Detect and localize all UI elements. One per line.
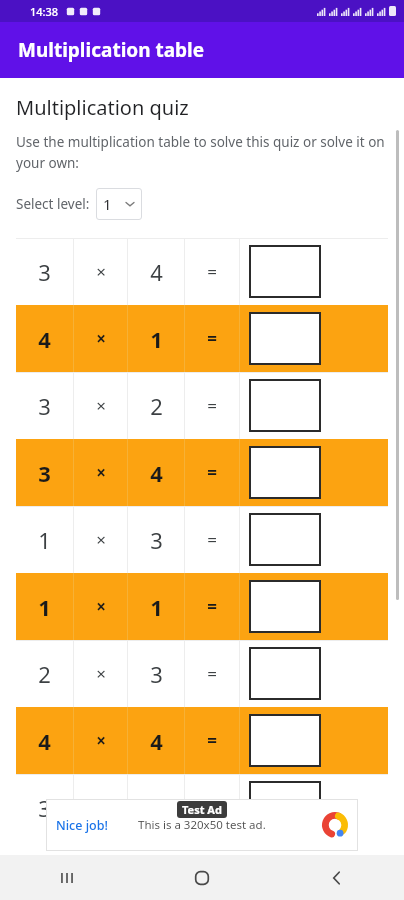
staticText: 1 <box>103 194 112 214</box>
staticText: 3 <box>150 659 163 689</box>
button[interactable]: 1 <box>96 188 142 220</box>
button[interactable]: 3 <box>16 774 388 841</box>
button[interactable]: Answer input <box>249 513 321 566</box>
staticText: 1 <box>150 592 163 622</box>
button[interactable]: 4 <box>16 305 388 372</box>
staticText: 1 <box>150 793 163 823</box>
button[interactable]: Answer input <box>249 781 321 834</box>
staticText: Select level: <box>16 195 90 213</box>
staticText: = <box>207 796 217 819</box>
staticText: × <box>96 796 106 819</box>
staticText: × <box>96 461 106 484</box>
staticText: 14:38 <box>30 4 59 19</box>
staticText: × <box>96 327 106 350</box>
staticText: = <box>207 394 217 417</box>
staticText: 4 <box>150 458 163 488</box>
button[interactable]: 4 <box>16 707 388 774</box>
staticText: 3 <box>38 793 51 823</box>
staticText: = <box>207 528 217 551</box>
button[interactable]: Answer input <box>249 647 321 700</box>
staticText: × <box>96 729 106 752</box>
staticText: 2 <box>150 391 163 421</box>
staticText: × <box>96 260 106 283</box>
button[interactable]: Back <box>269 855 404 900</box>
button[interactable]: Nice job! <box>46 799 358 851</box>
staticText: Nice job! <box>56 817 108 834</box>
staticText: 4 <box>150 257 163 287</box>
button[interactable]: Answer input <box>249 446 321 499</box>
staticText: × <box>96 394 106 417</box>
staticText: Use the multiplication table to solve th… <box>16 133 388 172</box>
staticText: 4 <box>150 726 163 756</box>
staticText: 1 <box>38 525 51 555</box>
staticText: = <box>207 729 217 752</box>
staticText: Multiplication table <box>18 37 205 63</box>
button[interactable]: Answer input <box>249 312 321 365</box>
staticText: 4 <box>38 324 51 354</box>
button[interactable]: 1 <box>16 573 388 640</box>
staticText: = <box>207 461 217 484</box>
staticText: 3 <box>38 257 51 287</box>
staticText: 3 <box>150 525 163 555</box>
staticText: 3 <box>38 458 51 488</box>
button[interactable]: Answer input <box>249 714 321 767</box>
staticText: = <box>207 662 217 685</box>
button[interactable]: 3 <box>16 439 388 506</box>
button[interactable]: 3 <box>16 238 388 305</box>
staticText: × <box>96 528 106 551</box>
button[interactable]: 2 <box>16 640 388 707</box>
staticText: 1 <box>150 324 163 354</box>
button[interactable]: Answer input <box>249 580 321 633</box>
staticText: 1 <box>38 592 51 622</box>
button[interactable]: Answer input <box>249 245 321 298</box>
button[interactable]: 3 <box>16 372 388 439</box>
staticText: = <box>207 260 217 283</box>
staticText: This is a 320x50 test ad. <box>138 817 266 833</box>
button[interactable]: Home <box>134 855 269 900</box>
button[interactable]: 1 <box>16 506 388 573</box>
staticText: 4 <box>38 726 51 756</box>
button[interactable]: Answer input <box>249 379 321 432</box>
staticText: Multiplication quiz <box>16 94 189 121</box>
staticText: = <box>207 595 217 618</box>
staticText: 3 <box>38 391 51 421</box>
button[interactable]: Recent apps <box>0 855 134 900</box>
staticText: 2 <box>38 659 51 689</box>
staticText: × <box>96 595 106 618</box>
staticText: Test Ad <box>182 802 222 817</box>
staticText: × <box>96 662 106 685</box>
staticText: = <box>207 327 217 350</box>
